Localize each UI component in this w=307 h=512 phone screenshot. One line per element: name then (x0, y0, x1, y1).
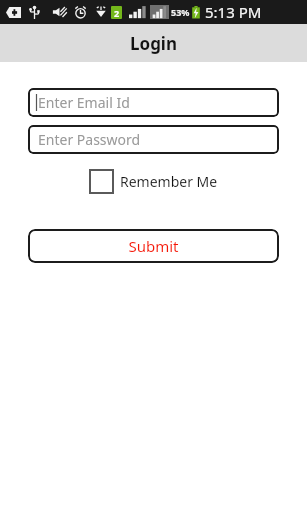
staticText: Enter Password (38, 130, 141, 149)
staticText: Enter Email Id (38, 93, 130, 112)
staticText: 53% (171, 6, 190, 18)
button[interactable]: Enter Password (28, 125, 279, 154)
staticText: Login (130, 32, 178, 55)
staticText: Remember Me (120, 172, 218, 191)
button[interactable]: Submit (28, 229, 279, 263)
button[interactable]: Remember Me (87, 167, 220, 196)
staticText: Submit (128, 236, 179, 256)
staticText: 2 (114, 7, 120, 19)
button[interactable]: Enter Email Id (28, 88, 279, 117)
staticText: 5:13 PM (205, 2, 262, 22)
